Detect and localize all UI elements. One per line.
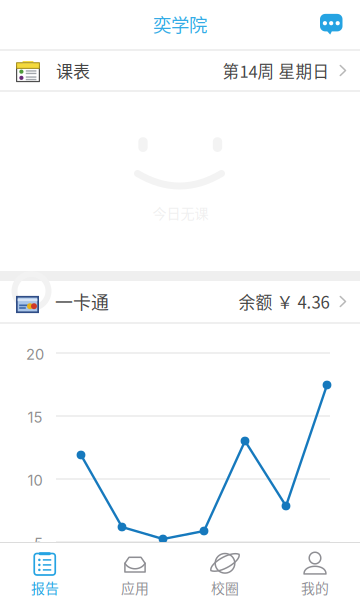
button[interactable]: 课表 [0,51,360,90]
staticText: 5 [34,535,43,552]
staticText: 15 [27,409,42,426]
staticText: 一卡通 [55,289,109,314]
staticText: 今日无课 [152,202,208,223]
staticText: 课表 [56,58,90,83]
button[interactable]: 应用 [90,543,180,600]
staticText: 20 [26,346,44,363]
staticText: 第14周 星期日 [222,58,329,82]
button[interactable]: Messages [306,0,359,49]
staticText: 应用 [121,577,149,598]
button[interactable]: 校圈 [180,543,270,600]
staticText: 奕学院 [153,11,207,37]
staticText: 校圈 [211,577,239,598]
button[interactable]: 一卡通 [0,281,360,322]
button[interactable]: 我的 [270,543,360,600]
button[interactable]: 报告 [0,543,90,600]
staticText: 我的 [301,577,329,598]
staticText: 报告 [31,577,59,598]
staticText: 余额 ￥ 4.36 [238,289,329,314]
staticText: 10 [27,472,42,489]
